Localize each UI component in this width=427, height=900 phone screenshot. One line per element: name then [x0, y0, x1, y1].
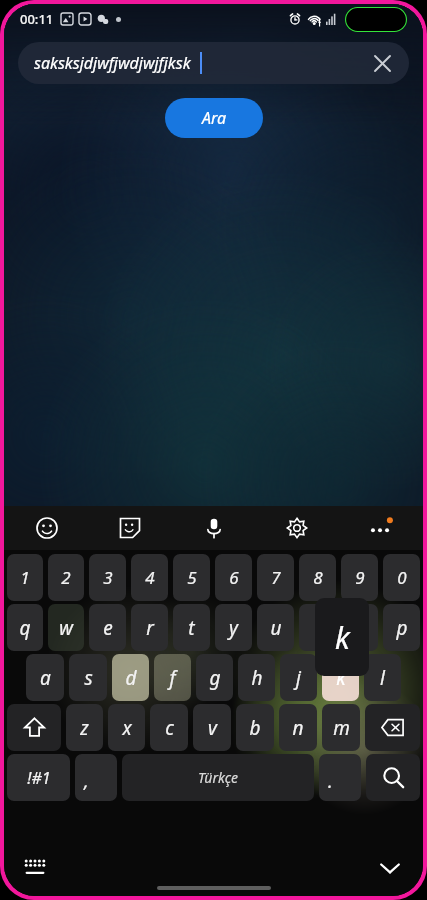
button[interactable]: x — [108, 704, 145, 751]
button[interactable]: f — [154, 654, 191, 701]
staticText: , — [84, 769, 89, 794]
button[interactable]: z — [66, 704, 103, 751]
staticText: a — [40, 665, 51, 691]
staticText: e — [103, 615, 113, 641]
button[interactable]: 1 — [7, 554, 43, 601]
staticText: 00:11 — [20, 10, 54, 28]
staticText: 9 — [355, 566, 365, 589]
button[interactable]: w — [48, 604, 84, 651]
button[interactable]: s — [69, 654, 107, 701]
staticText: 7 — [271, 566, 281, 589]
button[interactable]: r — [131, 604, 168, 651]
button[interactable]: d — [112, 654, 149, 701]
button[interactable]: 6 — [215, 554, 252, 601]
staticText: 2 — [61, 566, 71, 589]
button[interactable]: h — [238, 654, 275, 701]
staticText: v — [208, 715, 217, 741]
button[interactable]: Shift — [7, 704, 61, 751]
button[interactable]: p — [383, 604, 420, 651]
staticText: y — [229, 615, 238, 641]
button[interactable]: Keyboard settings — [280, 511, 314, 545]
staticText: p — [396, 615, 408, 641]
button[interactable]: Türkçe — [122, 754, 314, 801]
button[interactable]: 5 — [173, 554, 210, 601]
staticText: n — [292, 715, 304, 741]
staticText: l — [380, 665, 385, 691]
button[interactable]: u — [257, 604, 294, 651]
button[interactable]: y — [215, 604, 252, 651]
button[interactable]: l — [364, 654, 401, 701]
button[interactable]: e — [89, 604, 126, 651]
staticText: b — [249, 715, 261, 741]
button[interactable]: saksksjdjwfjwdjwjfjkskdkwkfkdkkd — [18, 42, 409, 84]
button[interactable]: Stickers — [113, 511, 147, 545]
staticText: saksksjdjwfjwdjwjfjkskdkwkfkdkkd — [34, 52, 199, 74]
staticText: Türkçe — [198, 768, 238, 787]
button[interactable]: j — [280, 654, 317, 701]
staticText: k — [335, 617, 350, 658]
staticText: 1 — [20, 566, 30, 589]
button[interactable]: a — [26, 654, 64, 701]
staticText: m — [333, 715, 350, 741]
staticText: u — [270, 615, 282, 641]
staticText: t — [188, 615, 195, 641]
staticText: w — [59, 615, 73, 641]
button[interactable]: 9 — [341, 554, 378, 601]
staticText: . — [328, 769, 333, 794]
button[interactable]: Clear text — [367, 48, 397, 78]
staticText: r — [146, 615, 154, 641]
button[interactable]: c — [150, 704, 188, 751]
button[interactable]: q — [7, 604, 43, 651]
button[interactable]: 3 — [89, 554, 126, 601]
button[interactable]: n — [279, 704, 317, 751]
staticText: z — [80, 715, 89, 741]
button[interactable]: m — [322, 704, 360, 751]
staticText: q — [19, 615, 31, 641]
staticText: 8 — [313, 566, 323, 589]
button[interactable]: Switch keyboard — [18, 851, 52, 885]
button[interactable]: 7 — [257, 554, 294, 601]
button[interactable]: Voice input — [197, 511, 231, 545]
button[interactable]: b — [236, 704, 274, 751]
staticText: x — [122, 715, 132, 741]
button[interactable]: o — [341, 604, 378, 651]
staticText: f — [169, 665, 176, 691]
button[interactable]: v — [193, 704, 231, 751]
staticText: c — [165, 715, 174, 741]
button[interactable]: , — [75, 754, 117, 801]
staticText: s — [84, 665, 93, 691]
staticText: h — [251, 665, 263, 691]
button[interactable]: 4 — [131, 554, 168, 601]
button[interactable]: Hide keyboard — [373, 851, 407, 885]
staticText: 5 — [187, 566, 197, 589]
button[interactable]: . — [319, 754, 361, 801]
staticText: 4 — [145, 566, 155, 589]
button[interactable]: Ara — [165, 98, 263, 138]
button[interactable]: Search — [366, 754, 420, 801]
button[interactable]: Emoji — [30, 511, 64, 545]
button[interactable]: More options — [363, 511, 397, 545]
staticText: g — [209, 665, 221, 691]
staticText: 3 — [103, 566, 113, 589]
staticText: Ara — [202, 107, 227, 129]
button[interactable]: !#1 — [7, 754, 70, 801]
staticText: j — [296, 665, 301, 691]
button[interactable]: ı — [299, 604, 336, 651]
button[interactable]: 0 — [383, 554, 420, 601]
button[interactable]: 2 — [48, 554, 84, 601]
button[interactable]: k — [322, 654, 359, 701]
staticText: k — [336, 665, 346, 691]
button[interactable]: t — [173, 604, 210, 651]
button[interactable]: 8 — [299, 554, 336, 601]
button[interactable]: g — [196, 654, 233, 701]
staticText: 6 — [229, 566, 239, 589]
staticText: d — [125, 665, 137, 691]
button[interactable]: Backspace — [365, 704, 420, 751]
staticText: !#1 — [27, 767, 51, 789]
staticText: 0 — [397, 566, 407, 589]
